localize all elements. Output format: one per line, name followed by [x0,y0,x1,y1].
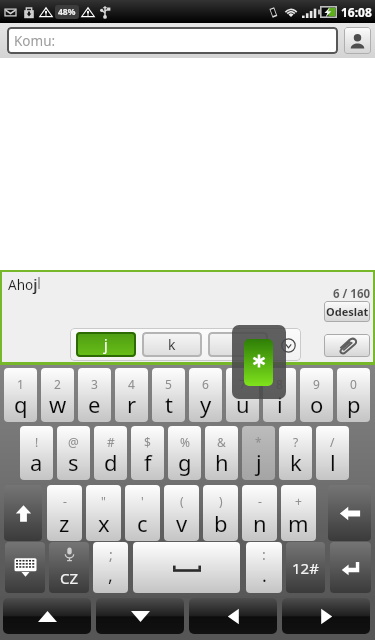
button[interactable]: Prilozit [324,334,370,357]
staticText: v [176,508,188,538]
staticText: 8 [276,376,283,392]
button[interactable]: Mezera [133,542,240,593]
staticText: g [178,447,192,477]
button[interactable]: : [246,542,282,593]
button[interactable]: Komu: [7,27,338,54]
button[interactable]: k [142,332,202,357]
staticText: 7 [239,376,246,392]
button[interactable]: " [86,485,121,541]
staticText: q [14,389,28,419]
staticText: Komu: [14,32,56,50]
staticText: + [295,493,302,509]
staticText: ; [109,545,113,564]
button[interactable]: down [96,598,184,634]
staticText: k [168,335,176,354]
staticText: $ [144,434,151,450]
button[interactable]: 6 [189,368,222,422]
button[interactable]: left [189,598,277,634]
staticText: t [165,389,173,419]
button[interactable]: Skryt klavesnici [5,542,45,593]
button[interactable]: - [242,485,277,541]
staticText: " [101,493,106,509]
staticText: / [330,434,335,450]
staticText: 2 [54,376,61,392]
button[interactable]: j [76,332,136,357]
staticText: z [59,508,70,538]
staticText: 6 / 160 [333,286,371,302]
button[interactable]: right [282,598,370,634]
staticText: & [217,434,226,450]
staticText: 12# [292,558,319,578]
button[interactable]: 7 [226,368,259,422]
button[interactable]: 2 [41,368,74,422]
button[interactable]: ; [93,542,128,593]
button[interactable]: 0 [337,368,370,422]
button[interactable]: - [47,485,82,541]
staticText: ' [141,493,144,509]
button[interactable]: # [94,426,127,480]
staticText: c [137,508,148,538]
staticText: j [34,276,38,294]
staticText: ! [35,434,39,450]
button[interactable]: 4 [115,368,148,422]
staticText: : [262,545,266,564]
button[interactable]: Jazyk CZ [49,542,89,593]
button[interactable]: up [3,598,91,634]
staticText: x [98,508,110,538]
button[interactable]: 5 [152,368,185,422]
staticText: i [277,389,283,419]
staticText: f [144,447,152,477]
button[interactable]: 1 [4,368,37,422]
button[interactable]: % [168,426,201,480]
staticText: a [30,447,43,477]
button[interactable]: + [281,485,316,541]
button[interactable]: ) [203,485,238,541]
staticText: n [253,508,267,538]
button[interactable]: * [242,426,275,480]
button[interactable]: Shift [4,485,42,541]
button[interactable]: ? [279,426,312,480]
button[interactable]: 3 [78,368,111,422]
staticText: 48% [58,6,76,18]
button[interactable]: Enter [330,542,371,593]
button[interactable]: $ [131,426,164,480]
staticText: 0 [350,376,357,392]
staticText: - [258,493,262,509]
button[interactable]: ( [164,485,199,541]
staticText: 16:08 [341,4,372,20]
button[interactable]: Smazat [328,485,371,541]
staticText: k [290,447,302,477]
button[interactable]: ! [20,426,53,480]
staticText: b [214,508,228,538]
button[interactable]: / [316,426,349,480]
staticText: 5 [165,376,172,392]
staticText: ( [180,493,184,509]
staticText: 1 [17,376,24,392]
button[interactable]: ' [125,485,160,541]
staticText: l [330,447,336,477]
button[interactable]: Cisla a symboly [286,542,325,593]
button[interactable]: @ [57,426,90,480]
staticText: y [200,389,212,419]
button[interactable]: & [205,426,238,480]
staticText: p [347,389,361,419]
staticText: u [236,389,250,419]
staticText: r [127,389,137,419]
staticText: o [310,389,324,419]
staticText: s [68,447,79,477]
staticText: . [262,563,267,588]
button[interactable]: 9 [300,368,333,422]
button[interactable]: Odeslat [324,301,370,322]
staticText: 4 [128,376,135,392]
staticText: j [104,335,108,354]
button[interactable] [208,332,268,357]
staticText: CZ [60,568,79,588]
staticText: d [104,447,118,477]
staticText: e [88,389,101,419]
button[interactable]: Dalsi navrhy [281,338,296,353]
staticText: 6 [202,376,209,392]
staticText: Odeslat [326,304,369,319]
button[interactable]: Vybrat kontakt [344,27,371,54]
staticText: - [63,493,67,509]
button[interactable]: 8 [263,368,296,422]
